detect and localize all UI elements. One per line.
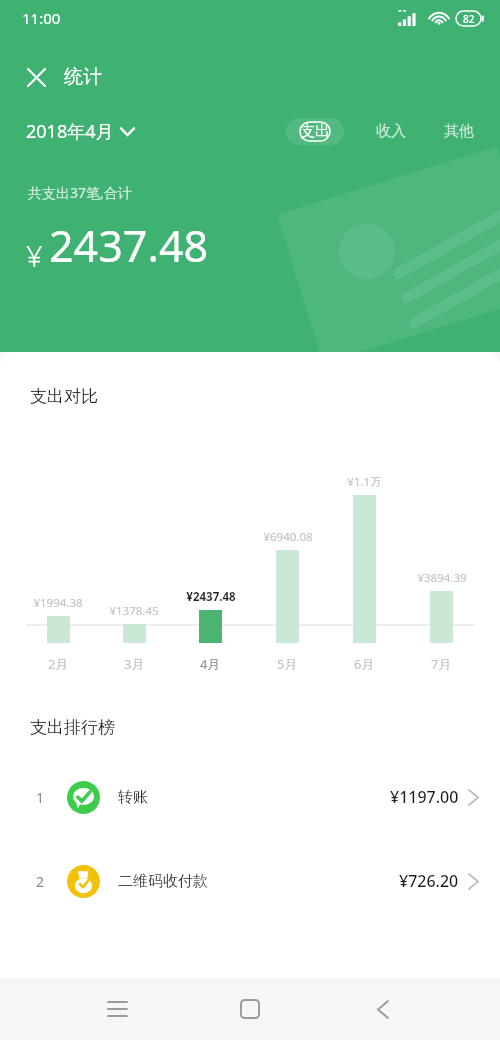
button[interactable]: 2018年4月 [26, 119, 134, 144]
staticText: 2437.48 [49, 216, 209, 275]
button[interactable]: 支出 [286, 118, 344, 145]
staticText: ¥1.1万 [347, 474, 382, 490]
button[interactable]: Back [355, 981, 411, 1037]
staticText: 支出对比 [30, 386, 98, 407]
staticText: 3月 [124, 655, 145, 673]
staticText: 2018年4月 [26, 119, 114, 144]
staticText: 6月 [354, 655, 375, 673]
staticText: 7月 [431, 655, 452, 673]
staticText: 二维码收付款 [118, 872, 208, 891]
button[interactable]: 其他 [440, 118, 478, 145]
button[interactable]: 收入 [372, 118, 410, 145]
staticText: 4月 [200, 655, 221, 673]
button[interactable]: Recent apps [89, 981, 145, 1037]
staticText: 支出 [300, 122, 330, 141]
button[interactable]: Home [222, 981, 278, 1037]
staticText: ¥1197.00 [390, 786, 459, 808]
button[interactable]: 1 [0, 774, 500, 820]
staticText: ¥6940.08 [263, 529, 313, 545]
staticText: 82 [463, 12, 475, 26]
staticText: 2 [36, 872, 45, 891]
staticText: ¥3894.39 [417, 570, 467, 586]
staticText: 11:00 [22, 8, 61, 28]
staticText: 收入 [376, 122, 406, 141]
staticText: ¥1378.45 [109, 603, 159, 619]
staticText: ¥ [26, 236, 43, 275]
staticText: 统计 [64, 65, 102, 89]
staticText: 共支出37笔,合计 [28, 183, 132, 202]
staticText: 转账 [118, 788, 148, 807]
staticText: 2月 [48, 655, 69, 673]
button[interactable]: Close [16, 57, 56, 97]
staticText: ¥2437.48 [186, 589, 236, 605]
staticText: ¥726.20 [399, 870, 459, 892]
staticText: 1 [36, 788, 45, 807]
staticText: ¥1994.38 [33, 595, 83, 611]
staticText: 其他 [444, 122, 474, 141]
staticText: 支出排行榜 [30, 717, 115, 738]
staticText: 5月 [277, 655, 298, 673]
button[interactable]: 2 [0, 858, 500, 904]
